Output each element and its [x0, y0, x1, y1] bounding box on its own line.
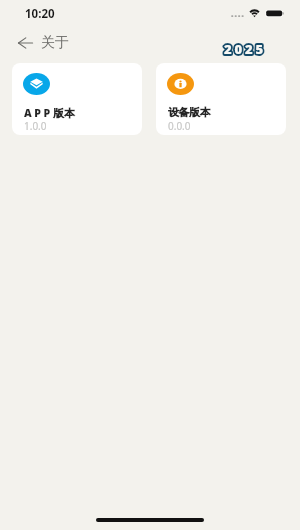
button[interactable]: APP 版本 [12, 63, 142, 135]
other: Back [18, 37, 33, 49]
staticText: 1.0.0 [24, 119, 47, 133]
button[interactable]: 设备版本 [156, 63, 286, 135]
staticText: 设备版本 [168, 106, 211, 119]
staticText: 关于 [41, 34, 69, 52]
staticText: APP 版本 [24, 106, 75, 120]
staticText: 10:20 [25, 6, 55, 22]
staticText: 2025 [224, 40, 267, 58]
staticText: 0.0.0 [168, 119, 191, 133]
staticText: 2025 [224, 40, 267, 58]
button[interactable]: Back [12, 30, 77, 58]
